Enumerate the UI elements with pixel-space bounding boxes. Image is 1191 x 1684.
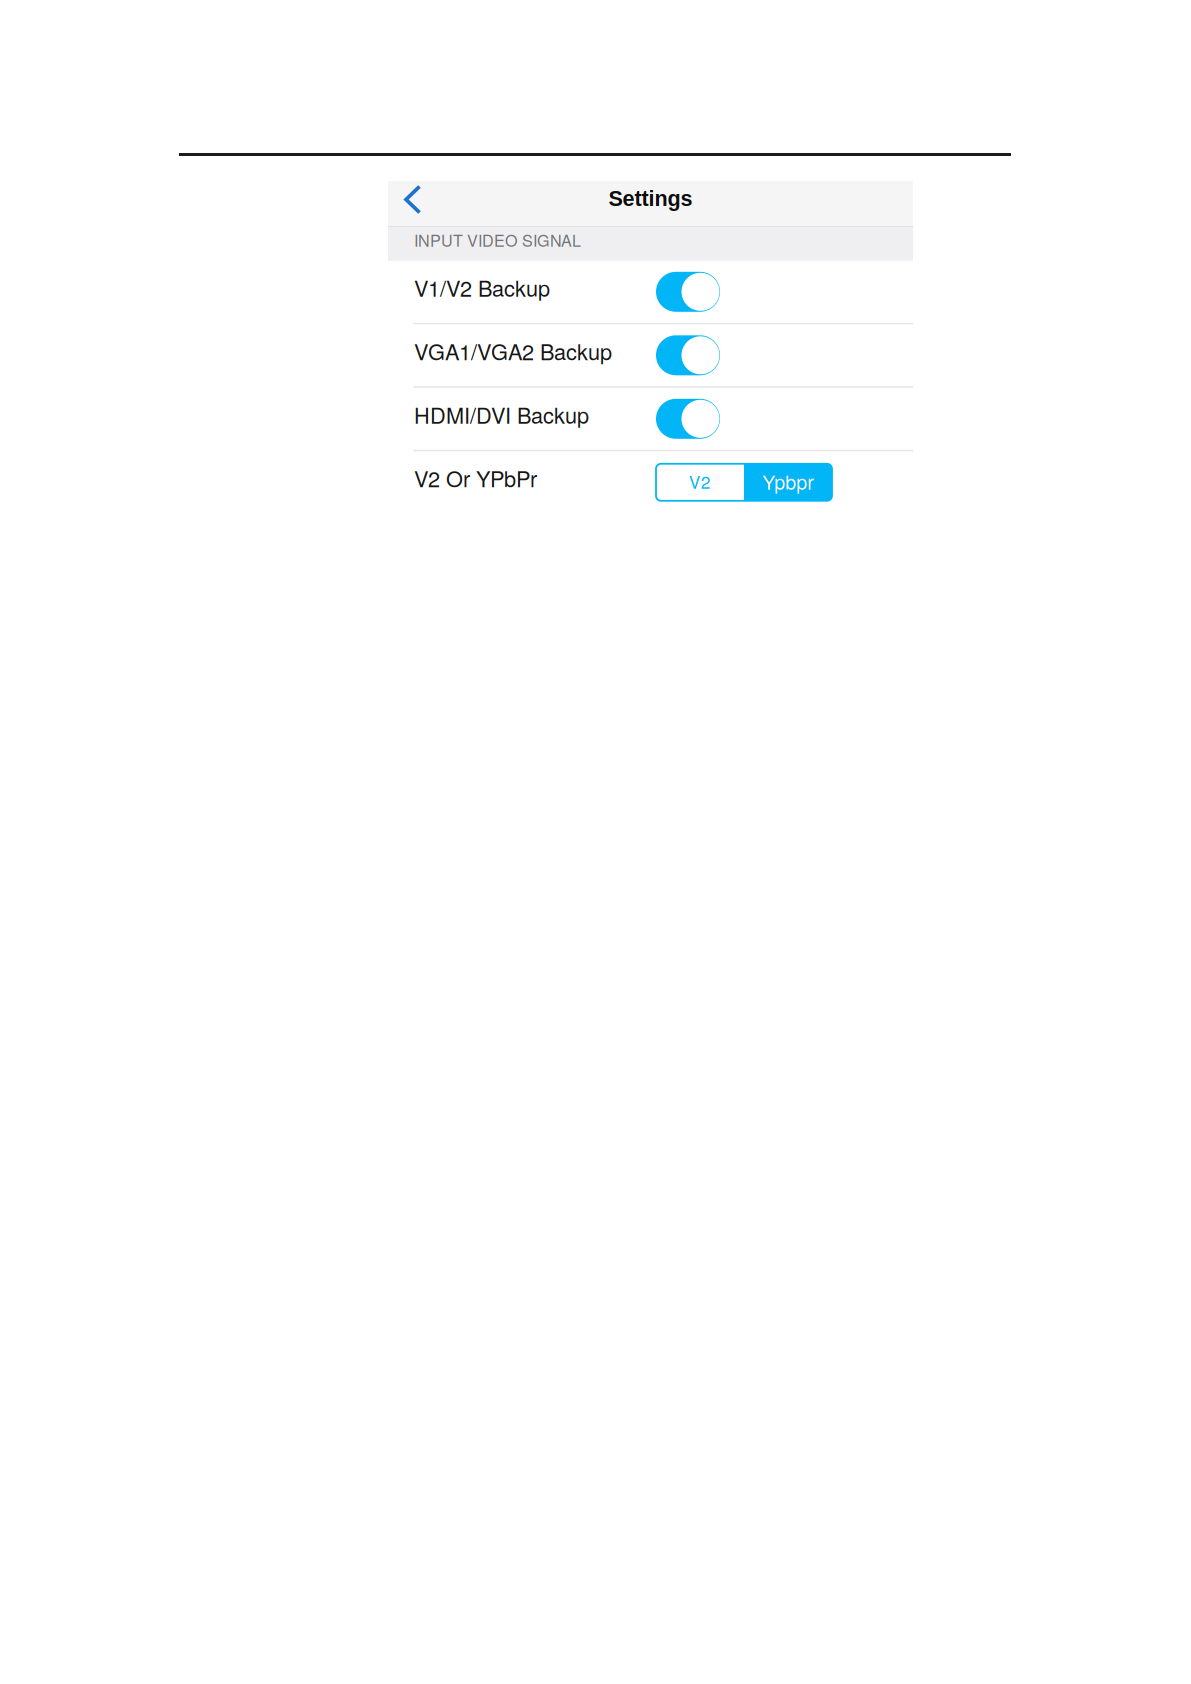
button[interactable]: V1/V2 Backup	[388, 261, 913, 323]
staticText: VGA1/VGA2 Backup	[414, 335, 612, 366]
staticText: V2	[689, 469, 711, 494]
staticText: INPUT VIDEO SIGNAL	[414, 228, 581, 251]
staticText: HDMI/DVI Backup	[414, 399, 589, 430]
staticText: Settings	[608, 186, 692, 210]
staticText: Ypbpr	[762, 467, 813, 495]
button[interactable]: Back	[388, 181, 450, 226]
button[interactable]: V2 Or YPbPr	[388, 451, 913, 513]
button[interactable]: HDMI/DVI Backup	[388, 388, 913, 450]
button[interactable]: V2	[656, 464, 832, 501]
staticText: V2 Or YPbPr	[414, 462, 537, 493]
staticText: V1/V2 Backup	[414, 272, 550, 303]
button[interactable]: VGA1/VGA2 Backup	[388, 324, 913, 386]
